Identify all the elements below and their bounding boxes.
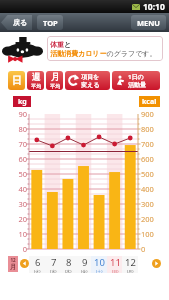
staticText: 8 — [66, 256, 72, 269]
staticText: kcal — [142, 97, 157, 107]
staticText: 変える — [81, 81, 100, 89]
staticText: (日) — [112, 269, 119, 273]
button[interactable]: 11 — [107, 256, 123, 273]
staticText: 12 — [10, 257, 16, 263]
staticText: 月 — [10, 263, 16, 271]
staticText: 平均 — [50, 83, 60, 89]
staticText: 9 — [82, 256, 88, 269]
button[interactable]: 10 — [91, 256, 107, 273]
button[interactable]: 次の期間 — [152, 259, 161, 268]
staticText: 200 — [141, 214, 154, 224]
staticText: (火) — [34, 269, 41, 273]
button[interactable]: TOP — [37, 15, 63, 30]
staticText: TOP — [43, 18, 58, 28]
staticText: 6 — [35, 256, 41, 269]
staticText: (木) — [65, 269, 72, 273]
staticText: 100 — [141, 229, 154, 239]
button[interactable]: 8 — [60, 256, 76, 273]
button[interactable]: 項目を — [65, 71, 110, 90]
staticText: 900 — [141, 109, 154, 119]
button[interactable]: 12 — [8, 256, 18, 272]
staticText: MENU — [137, 18, 161, 28]
staticText: 体重と — [50, 40, 72, 49]
staticText: 600 — [141, 154, 154, 164]
button[interactable]: 7 — [45, 256, 61, 273]
staticText: 40 — [18, 184, 27, 194]
button[interactable]: 月 — [46, 71, 63, 90]
staticText: 300 — [141, 199, 154, 209]
staticText: 平均 — [31, 83, 41, 89]
staticText: 10 — [18, 229, 27, 239]
button[interactable]: 12 — [122, 256, 138, 273]
staticText: 活動量 — [128, 81, 146, 89]
staticText: (水) — [50, 269, 57, 273]
staticText: 10 — [94, 256, 105, 269]
staticText: 12 — [125, 256, 136, 269]
staticText: 11 — [110, 256, 121, 269]
staticText: 月 — [51, 72, 60, 83]
staticText: 0 — [22, 244, 27, 254]
staticText: 20 — [18, 214, 27, 224]
staticText: 1日の — [128, 73, 144, 81]
staticText: 60 — [18, 154, 27, 164]
staticText: 800 — [141, 124, 154, 134]
staticText: 500 — [141, 169, 154, 179]
staticText: 週 — [32, 72, 41, 83]
staticText: 日 — [12, 74, 22, 87]
staticText: 0 — [141, 244, 146, 254]
staticText: kg — [18, 97, 27, 107]
staticText: 10:10 — [143, 1, 165, 13]
staticText: 活動消費カロリーのグラフです。 — [50, 49, 157, 58]
staticText: 30 — [18, 199, 27, 209]
button[interactable]: 日 — [8, 71, 25, 90]
staticText: (金) — [81, 269, 88, 273]
button[interactable]: 戻る — [1, 15, 33, 30]
button[interactable]: 前の期間 — [20, 259, 29, 268]
button[interactable]: 6 — [29, 256, 45, 273]
staticText: 400 — [141, 184, 154, 194]
button[interactable]: 週 — [27, 71, 44, 90]
staticText: 80 — [18, 124, 27, 134]
button[interactable]: 9 — [76, 256, 92, 273]
staticText: 70 — [18, 139, 27, 149]
button[interactable]: MENU — [131, 15, 166, 30]
staticText: 700 — [141, 139, 154, 149]
staticText: (土) — [96, 269, 103, 273]
staticText: (月) — [127, 269, 134, 273]
staticText: 50 — [18, 169, 27, 179]
staticText: 戻る — [13, 18, 28, 27]
button[interactable]: 1日の — [112, 71, 160, 90]
staticText: 90 — [18, 109, 27, 119]
staticText: 7 — [51, 256, 57, 269]
staticText: 項目を — [81, 73, 100, 81]
